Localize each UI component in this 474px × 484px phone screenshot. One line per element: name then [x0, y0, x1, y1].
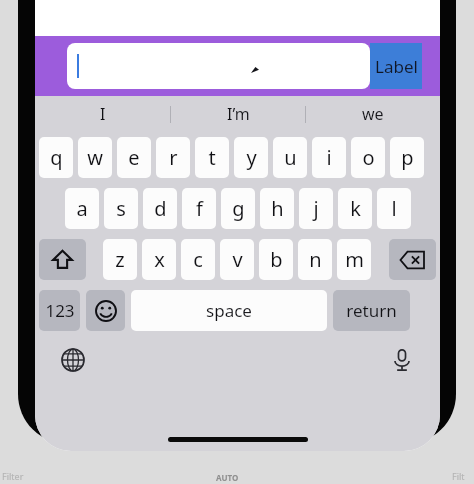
button[interactable]: i: [312, 137, 346, 178]
staticText: we: [362, 103, 384, 125]
staticText: AUTO: [216, 472, 239, 483]
button[interactable]: c: [181, 239, 215, 280]
button[interactable]: g: [221, 188, 255, 229]
staticText: u: [284, 144, 297, 171]
staticText: s: [116, 195, 126, 222]
button[interactable]: p: [390, 137, 424, 178]
button[interactable]: t: [195, 137, 229, 178]
button[interactable]: o: [351, 137, 385, 178]
staticText: Label: [375, 55, 418, 78]
staticText: b: [270, 246, 283, 273]
button[interactable]: m: [337, 239, 371, 280]
staticText: f: [196, 195, 203, 222]
button[interactable]: Backspace: [389, 239, 436, 280]
staticText: l: [391, 195, 397, 222]
staticText: x: [154, 246, 165, 273]
button[interactable]: Emoji: [86, 290, 125, 331]
button[interactable]: space: [131, 290, 327, 331]
staticText: a: [76, 195, 88, 222]
button[interactable]: [67, 43, 370, 89]
button[interactable]: w: [78, 137, 112, 178]
button[interactable]: e: [117, 137, 151, 178]
staticText: w: [87, 144, 103, 171]
staticText: g: [232, 195, 245, 222]
button[interactable]: f: [182, 188, 216, 229]
button[interactable]: q: [39, 137, 73, 178]
staticText: t: [208, 144, 216, 171]
staticText: 123: [45, 299, 75, 322]
button[interactable]: a: [65, 188, 99, 229]
button[interactable]: u: [273, 137, 307, 178]
button[interactable]: return: [333, 290, 410, 331]
button[interactable]: Dictate: [382, 340, 422, 380]
staticText: e: [128, 144, 140, 171]
staticText: Filter: [2, 470, 24, 482]
staticText: I’m: [227, 103, 250, 125]
button[interactable]: y: [234, 137, 268, 178]
staticText: m: [345, 246, 364, 273]
staticText: space: [206, 299, 252, 322]
staticText: c: [193, 246, 203, 273]
button[interactable]: j: [299, 188, 333, 229]
staticText: r: [169, 144, 178, 171]
staticText: n: [309, 246, 322, 273]
staticText: z: [115, 246, 125, 273]
button[interactable]: k: [338, 188, 372, 229]
staticText: Filt: [452, 470, 465, 482]
staticText: q: [50, 144, 63, 171]
staticText: return: [346, 299, 397, 322]
staticText: y: [246, 144, 257, 171]
staticText: p: [401, 144, 414, 171]
button[interactable]: I’m: [171, 96, 305, 132]
button[interactable]: x: [142, 239, 176, 280]
button[interactable]: d: [143, 188, 177, 229]
staticText: v: [232, 246, 243, 273]
button[interactable]: we: [306, 96, 440, 132]
staticText: k: [350, 195, 361, 222]
button[interactable]: b: [259, 239, 293, 280]
button[interactable]: I: [35, 96, 170, 132]
staticText: h: [271, 195, 284, 222]
button[interactable]: Shift: [39, 239, 86, 280]
button[interactable]: 123: [39, 290, 80, 331]
staticText: I: [100, 103, 106, 125]
staticText: o: [362, 144, 375, 171]
button[interactable]: z: [103, 239, 137, 280]
button[interactable]: v: [220, 239, 254, 280]
button[interactable]: n: [298, 239, 332, 280]
button[interactable]: h: [260, 188, 294, 229]
staticText: j: [313, 195, 319, 222]
staticText: d: [154, 195, 167, 222]
button[interactable]: r: [156, 137, 190, 178]
button[interactable]: Label: [370, 43, 422, 89]
button[interactable]: s: [104, 188, 138, 229]
button[interactable]: l: [377, 188, 411, 229]
staticText: i: [326, 144, 332, 171]
button[interactable]: Change keyboard language: [53, 340, 93, 380]
